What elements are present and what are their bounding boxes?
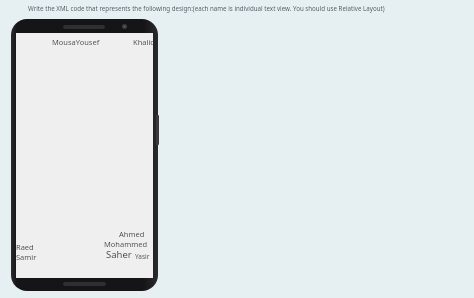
button[interactable]: Mohammed — [104, 239, 148, 249]
button[interactable]: Khalid — [133, 37, 155, 47]
button[interactable]: MousaYousef — [52, 37, 100, 47]
staticText: Yasir — [135, 252, 150, 261]
staticText: Mohammed — [104, 239, 148, 249]
staticText: Samir — [16, 252, 37, 262]
staticText: Ahmed — [119, 229, 145, 239]
staticText: Khalid — [133, 37, 155, 47]
staticText: MousaYousef — [52, 37, 100, 47]
button[interactable]: Saher — [106, 248, 132, 261]
other: Power button — [156, 115, 159, 145]
staticText: Saher — [106, 248, 132, 261]
button[interactable]: Yasir — [135, 252, 150, 261]
button[interactable]: Ahmed — [119, 229, 145, 239]
button[interactable]: Raed — [16, 242, 34, 252]
staticText: Write the XML code that represents the f… — [28, 4, 385, 12]
button[interactable]: Samir — [16, 252, 37, 262]
staticText: Raed — [16, 242, 34, 252]
